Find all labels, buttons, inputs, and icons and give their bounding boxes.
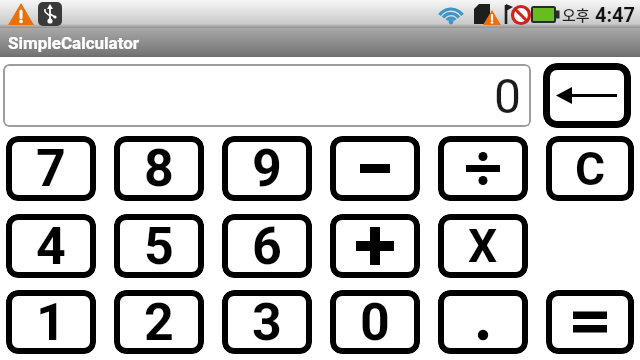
- staticText: 오후: [562, 4, 590, 26]
- staticText: 3: [252, 292, 282, 353]
- button[interactable]: [330, 214, 420, 278]
- button[interactable]: 7: [6, 136, 96, 201]
- button[interactable]: 1: [6, 290, 96, 354]
- button[interactable]: 4: [6, 214, 96, 278]
- staticText: 7: [36, 138, 66, 199]
- staticText: 4:47: [595, 3, 636, 26]
- button[interactable]: 6: [222, 214, 312, 278]
- staticText: 4: [36, 216, 66, 277]
- button[interactable]: [546, 290, 634, 354]
- button[interactable]: [543, 63, 631, 128]
- button[interactable]: [438, 290, 528, 354]
- staticText: 6: [252, 216, 282, 277]
- button[interactable]: X: [438, 214, 528, 278]
- button[interactable]: 8: [114, 136, 204, 201]
- staticText: X: [468, 219, 498, 273]
- button[interactable]: 2: [114, 290, 204, 354]
- staticText: C: [575, 142, 606, 196]
- button[interactable]: 9: [222, 136, 312, 201]
- staticText: 5: [144, 216, 174, 277]
- button[interactable]: 3: [222, 290, 312, 354]
- staticText: 1: [36, 292, 66, 353]
- staticText: 9: [252, 138, 282, 199]
- button[interactable]: 0: [330, 290, 420, 354]
- staticText: 0: [360, 292, 390, 353]
- button[interactable]: 0: [3, 64, 531, 127]
- button[interactable]: [330, 136, 420, 201]
- staticText: 8: [144, 138, 174, 199]
- button[interactable]: [438, 136, 528, 201]
- staticText: 0: [494, 68, 521, 124]
- staticText: 2: [144, 292, 174, 353]
- staticText: SimpleCalculator: [8, 33, 140, 53]
- button[interactable]: C: [546, 136, 634, 201]
- button[interactable]: 5: [114, 214, 204, 278]
